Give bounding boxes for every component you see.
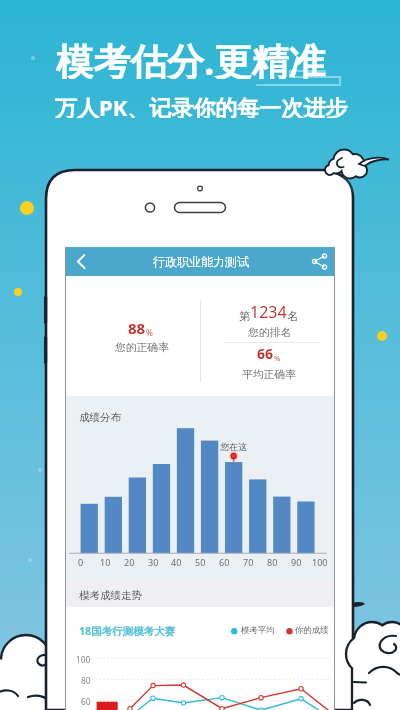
staticText: 88: [128, 318, 146, 338]
staticText: 40: [171, 556, 182, 568]
staticText: 30: [148, 556, 159, 568]
staticText: 万人PK、记录你的每一次进步: [55, 92, 348, 118]
staticText: 80: [81, 675, 91, 686]
staticText: 第: [239, 309, 250, 323]
staticText: 名: [287, 309, 298, 323]
staticText: 90: [291, 556, 302, 568]
staticText: 66: [257, 344, 274, 363]
staticText: 平均正确率: [242, 368, 296, 382]
staticText: %: [146, 327, 153, 338]
staticText: %: [274, 353, 281, 363]
staticText: 您在这: [220, 441, 247, 452]
staticText: 成绩分布: [79, 411, 121, 424]
staticText: 模考平均: [241, 625, 275, 636]
staticText: 50: [195, 556, 206, 568]
staticText: 18国考行测模考大赛: [79, 624, 176, 638]
staticText: 模考成绩走势: [79, 589, 142, 602]
staticText: 80: [267, 556, 278, 568]
staticText: 模考估分.更精准: [56, 35, 326, 79]
staticText: 60: [81, 696, 91, 707]
staticText: 100: [312, 556, 328, 568]
staticText: 0: [78, 556, 84, 568]
staticText: 60: [219, 556, 230, 568]
button[interactable]: Back: [68, 249, 94, 274]
staticText: 您的排名: [248, 326, 292, 340]
staticText: 你的成绩: [295, 625, 329, 636]
staticText: 行政职业能力测试: [153, 254, 249, 269]
button[interactable]: Share: [307, 249, 333, 274]
staticText: 70: [243, 556, 254, 568]
staticText: 100: [76, 654, 91, 665]
staticText: 20: [124, 556, 135, 568]
staticText: 1234: [250, 301, 287, 323]
staticText: 您的正确率: [115, 341, 169, 355]
staticText: 10: [100, 556, 111, 568]
